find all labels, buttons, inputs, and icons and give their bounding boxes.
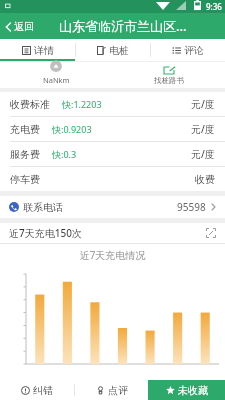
staticText: 详情 [34,44,54,57]
button[interactable]: 停车费 [0,167,225,191]
staticText: 快:0.9203 [52,123,92,135]
button[interactable]: 纠错 [0,380,74,400]
button[interactable]: 电桩 [76,39,150,61]
staticText: 停车费 [10,173,40,186]
staticText: 山东省临沂市兰山区... [59,17,187,35]
staticText: 近7天充电情况 [0,248,225,262]
button[interactable]: NaNkm [0,62,112,88]
staticText: 充电费 [10,123,40,136]
staticText: NaNkm [43,75,70,85]
staticText: 元/度 [191,122,215,136]
staticText: 收费标准 [10,98,50,111]
staticText: 服务费 [10,148,40,161]
staticText: 点评 [108,384,128,397]
button[interactable]: 充电费 [0,117,225,141]
button[interactable]: 找桩路书 [112,62,225,88]
button[interactable]: 返回 [0,17,39,36]
staticText: 收费 [195,173,215,186]
button[interactable]: 未收藏 [148,380,225,400]
staticText: 9:36 [206,1,222,12]
button[interactable]: 联系电话 [0,196,225,218]
staticText: 未收藏 [178,384,208,397]
button[interactable]: 点评 [75,380,148,400]
staticText: 电桩 [109,44,129,57]
staticText: 返回 [14,20,34,33]
staticText: 快:0.3 [52,148,77,160]
staticText: 近7天充电150次 [9,226,82,240]
button[interactable]: 服务费 [0,142,225,166]
button[interactable]: 详情 [0,39,75,61]
staticText: 95598 [177,200,206,214]
button[interactable]: 近7天充电150次 [0,223,225,243]
other: Expand [206,228,216,238]
button[interactable]: 评论 [151,39,225,61]
staticText: 快:1.2203 [62,98,102,110]
staticText: 元/度 [191,147,215,161]
staticText: 找桩路书 [154,76,184,85]
staticText: 联系电话 [23,201,63,214]
button[interactable]: 收费标准 [0,92,225,116]
staticText: 元/度 [191,97,215,111]
staticText: 评论 [184,44,204,57]
staticText: 纠错 [33,384,53,397]
